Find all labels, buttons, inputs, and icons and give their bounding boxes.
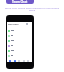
- button[interactable]: Tab 1: [8, 59, 11, 62]
- button[interactable]: Tab 3: [17, 59, 20, 62]
- button[interactable]: [8, 48, 32, 53]
- staticText: Team Chat: [12, 0, 28, 4]
- button[interactable]: [8, 33, 32, 38]
- button[interactable]: Tab 4: [22, 59, 25, 62]
- staticText: Messages: [8, 23, 19, 26]
- button[interactable]: Tab 5: [26, 59, 29, 62]
- button[interactable]: Team Chat: [6, 0, 34, 4]
- button[interactable]: Tab 2: [13, 59, 16, 62]
- button[interactable]: [8, 53, 32, 58]
- staticText: Bring your whole team together in one si…: [2, 6, 62, 12]
- button[interactable]: [8, 38, 32, 43]
- button[interactable]: [8, 43, 32, 48]
- button[interactable]: [8, 28, 32, 33]
